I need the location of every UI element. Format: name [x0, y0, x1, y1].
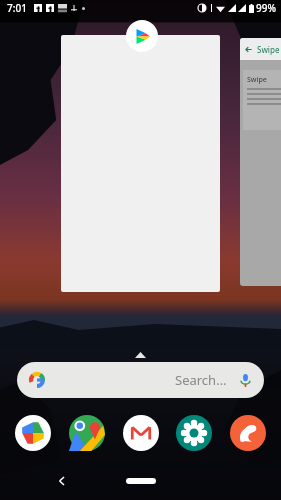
- staticText: Swipe: [247, 75, 267, 85]
- button[interactable]: [61, 35, 220, 292]
- button[interactable]: Photos: [14, 414, 52, 452]
- button[interactable]: Maps: [68, 414, 106, 452]
- button[interactable]: Search...: [17, 362, 264, 398]
- staticText: Search...: [175, 371, 227, 389]
- button[interactable]: Google Play: [126, 20, 158, 52]
- staticText: 7:01: [7, 1, 27, 15]
- button[interactable]: Swipe: [240, 38, 281, 286]
- button[interactable]: Gmail: [122, 414, 160, 452]
- button[interactable]: Browser: [229, 414, 267, 452]
- staticText: Swipe: [257, 44, 280, 55]
- button[interactable]: Back: [50, 469, 74, 493]
- button[interactable]: Home: [126, 478, 156, 484]
- staticText: 99%: [256, 1, 276, 15]
- button[interactable]: Settings: [175, 414, 213, 452]
